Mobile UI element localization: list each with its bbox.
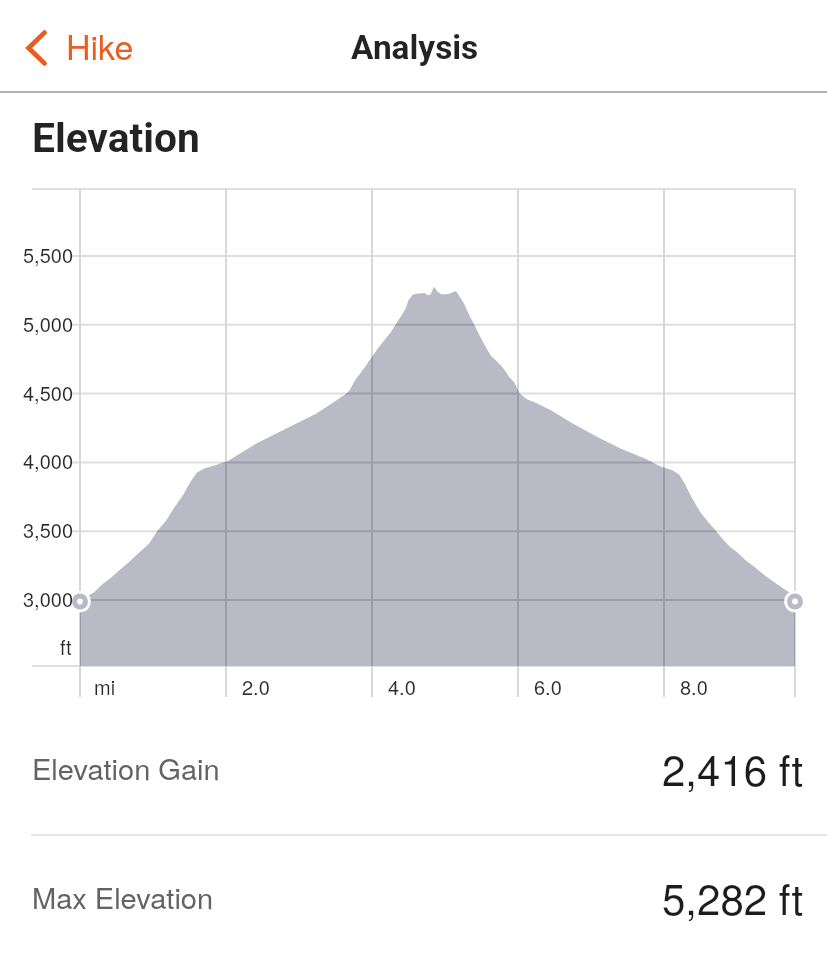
staticText: 5,000	[23, 309, 74, 338]
button[interactable]: Elevation Gain	[0, 735, 827, 801]
staticText: Elevation Gain	[32, 747, 220, 789]
staticText: Analysis	[351, 28, 479, 67]
staticText: 2.0	[242, 672, 270, 701]
staticText: Elevation	[32, 114, 200, 162]
staticText: 3,500	[23, 515, 74, 544]
staticText: Hike	[66, 21, 134, 70]
staticText: 4,000	[23, 446, 74, 475]
staticText: 2,416 ft	[662, 738, 804, 798]
button[interactable]: Max Elevation	[0, 864, 827, 930]
staticText: 6.0	[534, 672, 562, 701]
staticText: mi	[94, 672, 116, 701]
staticText: 4,500	[23, 378, 74, 407]
other: Back to Hike	[26, 30, 47, 66]
staticText: 5,282 ft	[662, 867, 804, 927]
staticText: 5,500	[23, 240, 74, 269]
staticText: ft	[60, 632, 72, 661]
staticText: 3,000	[23, 584, 74, 613]
button[interactable]: Back to Hike	[22, 17, 137, 78]
staticText: 4.0	[388, 672, 416, 701]
staticText: Max Elevation	[32, 876, 214, 918]
staticText: 8.0	[680, 672, 708, 701]
